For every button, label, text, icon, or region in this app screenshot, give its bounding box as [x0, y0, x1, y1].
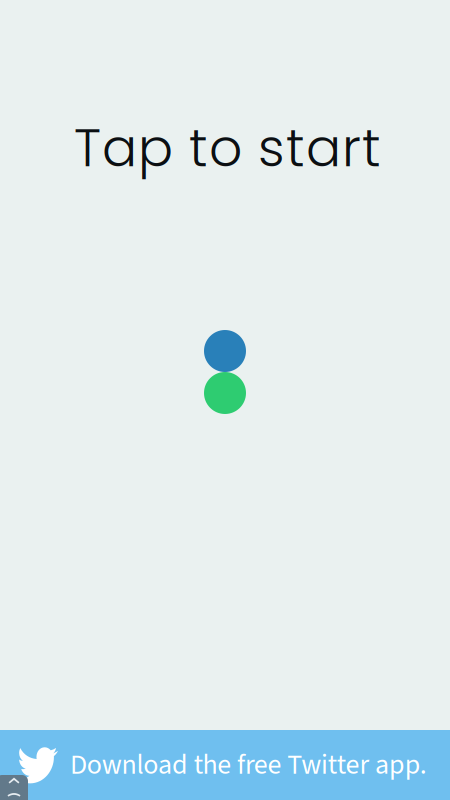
button[interactable]: Tap to start: [7, 122, 442, 174]
staticText: Tap to start: [74, 112, 381, 184]
button[interactable]: Download the free Twitter app.: [0, 730, 450, 800]
staticText: Download the free Twitter app.: [70, 745, 427, 785]
button[interactable]: Collapse advertisement: [0, 775, 28, 800]
